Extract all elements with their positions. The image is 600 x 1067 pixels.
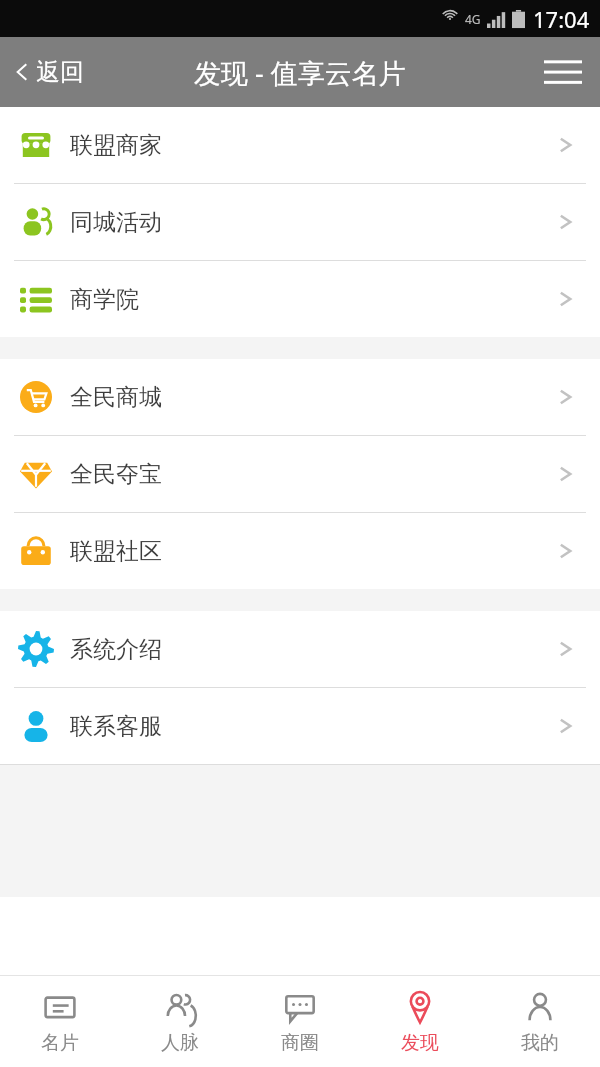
- staticText: 发现: [401, 1031, 439, 1055]
- button[interactable]: 我的: [480, 976, 600, 1067]
- staticText: 返回: [36, 57, 84, 87]
- staticText: 商圈: [281, 1031, 319, 1055]
- staticText: 系统介绍: [70, 635, 162, 664]
- staticText: 联盟商家: [70, 131, 162, 160]
- button[interactable]: 系统介绍: [0, 611, 600, 687]
- button[interactable]: 全民夺宝: [0, 436, 600, 512]
- button[interactable]: 发现: [360, 976, 480, 1067]
- staticText: 4G: [465, 11, 481, 27]
- staticText: 人脉: [161, 1031, 199, 1055]
- staticText: 商学院: [70, 285, 139, 314]
- button[interactable]: Menu: [526, 37, 600, 107]
- staticText: 我的: [521, 1031, 559, 1055]
- staticText: 名片: [41, 1031, 79, 1055]
- button[interactable]: 返回: [0, 37, 98, 107]
- button[interactable]: 商学院: [0, 261, 600, 337]
- button[interactable]: 联盟商家: [0, 107, 600, 183]
- button[interactable]: 商圈: [240, 976, 360, 1067]
- staticText: 联系客服: [70, 712, 162, 741]
- staticText: 同城活动: [70, 208, 162, 237]
- staticText: 全民商城: [70, 383, 162, 412]
- button[interactable]: 名片: [0, 976, 120, 1067]
- staticText: 全民夺宝: [70, 460, 162, 489]
- button[interactable]: 人脉: [120, 976, 240, 1067]
- button[interactable]: 全民商城: [0, 359, 600, 435]
- staticText: 发现 - 值享云名片: [194, 54, 406, 91]
- button[interactable]: 同城活动: [0, 184, 600, 260]
- staticText: 联盟社区: [70, 537, 162, 566]
- staticText: 17:04: [533, 4, 590, 34]
- button[interactable]: 联系客服: [0, 688, 600, 764]
- button[interactable]: 联盟社区: [0, 513, 600, 589]
